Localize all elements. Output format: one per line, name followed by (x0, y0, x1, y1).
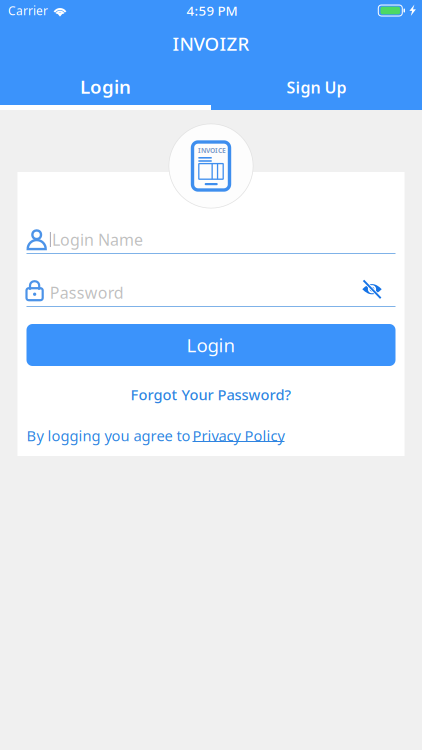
button[interactable]: Login (0, 70, 211, 110)
button[interactable]: Show password (355, 279, 395, 306)
staticText: INVOICE (198, 146, 226, 155)
button[interactable]: Privacy Policy (192, 427, 284, 444)
staticText: Login (186, 333, 235, 357)
button[interactable]: Forgot Your Password? (26, 386, 395, 403)
staticText: By logging you agree to (26, 426, 190, 445)
staticText: INVOIZR (172, 31, 249, 56)
staticText: Login (80, 74, 131, 99)
staticText: Forgot Your Password? (130, 385, 291, 404)
staticText: 4:59 PM (186, 2, 237, 19)
button[interactable]: Login Name (26, 226, 395, 253)
staticText: Privacy Policy (192, 426, 284, 445)
staticText: Login Name (52, 229, 143, 250)
staticText: Password (50, 282, 124, 303)
staticText: Sign Up (286, 77, 346, 98)
button[interactable]: Password (26, 279, 355, 306)
staticText: Carrier (8, 2, 48, 18)
button[interactable]: Sign Up (211, 70, 422, 110)
button[interactable]: Login (26, 324, 395, 366)
